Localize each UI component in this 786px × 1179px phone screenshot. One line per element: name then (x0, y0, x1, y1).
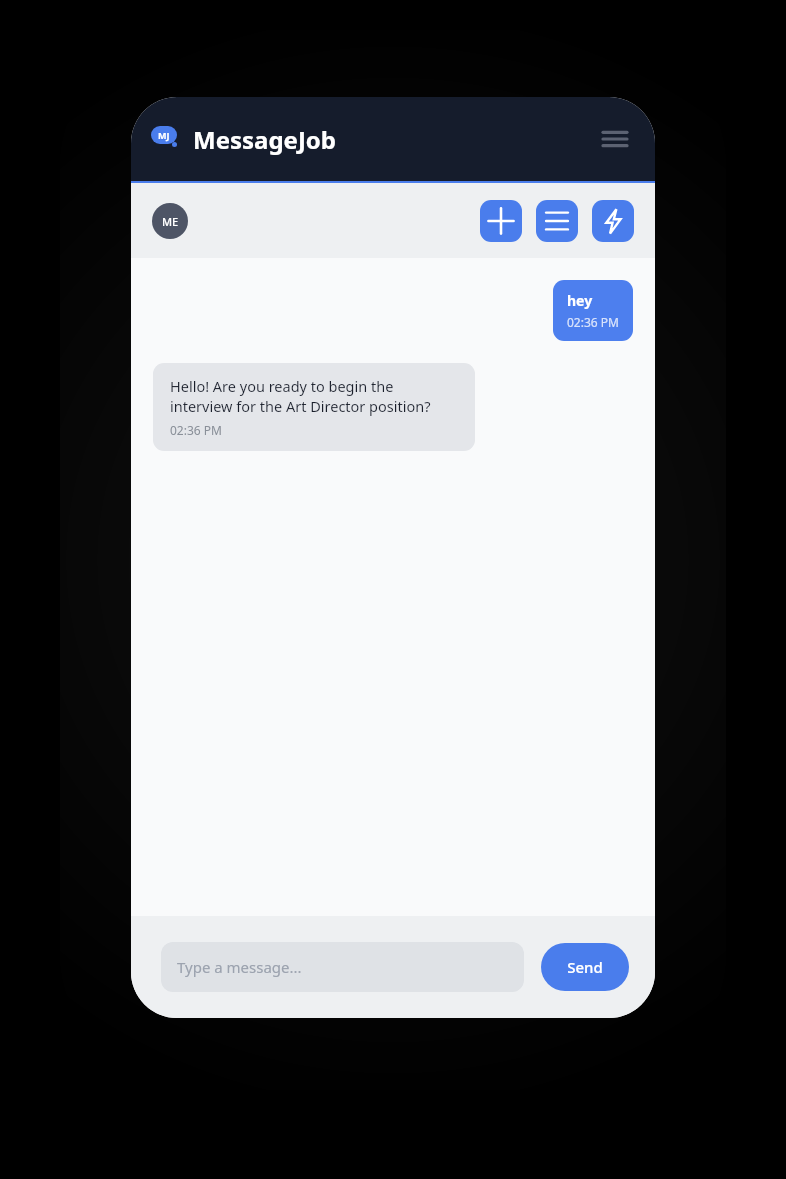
staticText: ME (162, 214, 179, 229)
button[interactable]: Send (541, 943, 629, 991)
button[interactable]: Hello! Are you ready to begin the interv… (153, 363, 475, 451)
staticText: Hello! Are you ready to begin the interv… (170, 376, 458, 417)
button[interactable]: Menu (595, 119, 635, 159)
staticText: hey (567, 291, 593, 310)
staticText: Send (567, 957, 603, 977)
staticText: 02:36 PM (170, 422, 222, 438)
button[interactable]: Quick actions (592, 200, 634, 242)
staticText: 02:36 PM (567, 314, 619, 330)
staticText: MessageJob (193, 123, 337, 156)
button[interactable]: hey (553, 280, 633, 341)
button[interactable]: Type a message... (161, 942, 524, 992)
button[interactable]: My profile (152, 203, 188, 239)
staticText: MJ (158, 129, 170, 141)
staticText: Type a message... (177, 957, 302, 977)
button[interactable]: New chat (480, 200, 522, 242)
button[interactable]: Conversations (536, 200, 578, 242)
